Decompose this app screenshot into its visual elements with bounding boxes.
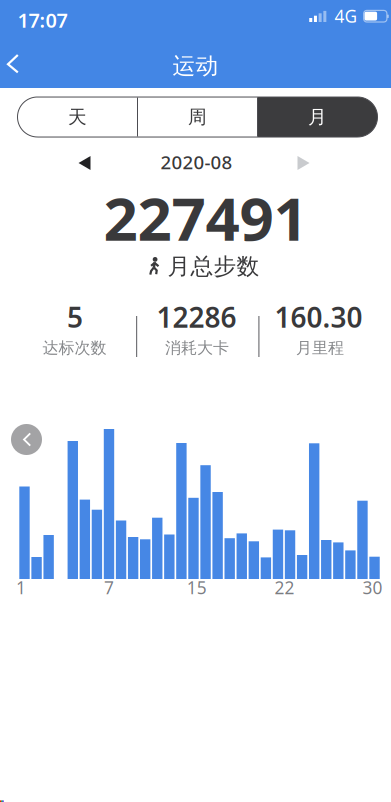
staticText: 17:07 xyxy=(17,7,67,33)
staticText: 5 xyxy=(67,298,83,336)
staticText: 22 xyxy=(275,576,295,599)
staticText: 1 xyxy=(16,576,26,599)
button[interactable]: 天 xyxy=(17,97,137,137)
staticText: 月 xyxy=(308,105,327,128)
staticText: 2020-08 xyxy=(160,150,232,174)
staticText: 7 xyxy=(104,576,114,599)
staticText: 周 xyxy=(188,105,207,128)
staticText: 15 xyxy=(187,576,207,599)
staticText: 4G xyxy=(334,4,357,27)
button[interactable]: Previous month xyxy=(74,152,96,174)
button[interactable]: 月 xyxy=(257,97,377,137)
staticText: 月里程 xyxy=(296,338,344,358)
staticText: 运动 xyxy=(172,52,218,80)
staticText: 12286 xyxy=(156,298,236,336)
button[interactable]: Next month xyxy=(291,152,313,174)
staticText: 227491 xyxy=(103,178,307,257)
staticText: 160.30 xyxy=(274,298,362,336)
button[interactable]: Back xyxy=(0,44,44,86)
staticText: 达标次数 xyxy=(42,338,106,358)
button[interactable]: 周 xyxy=(137,97,257,137)
staticText: 30 xyxy=(362,576,382,599)
staticText: 消耗大卡 xyxy=(165,338,229,358)
button[interactable]: Back xyxy=(11,424,42,455)
staticText: 天 xyxy=(68,105,87,128)
staticText: 月总步数 xyxy=(167,253,259,280)
